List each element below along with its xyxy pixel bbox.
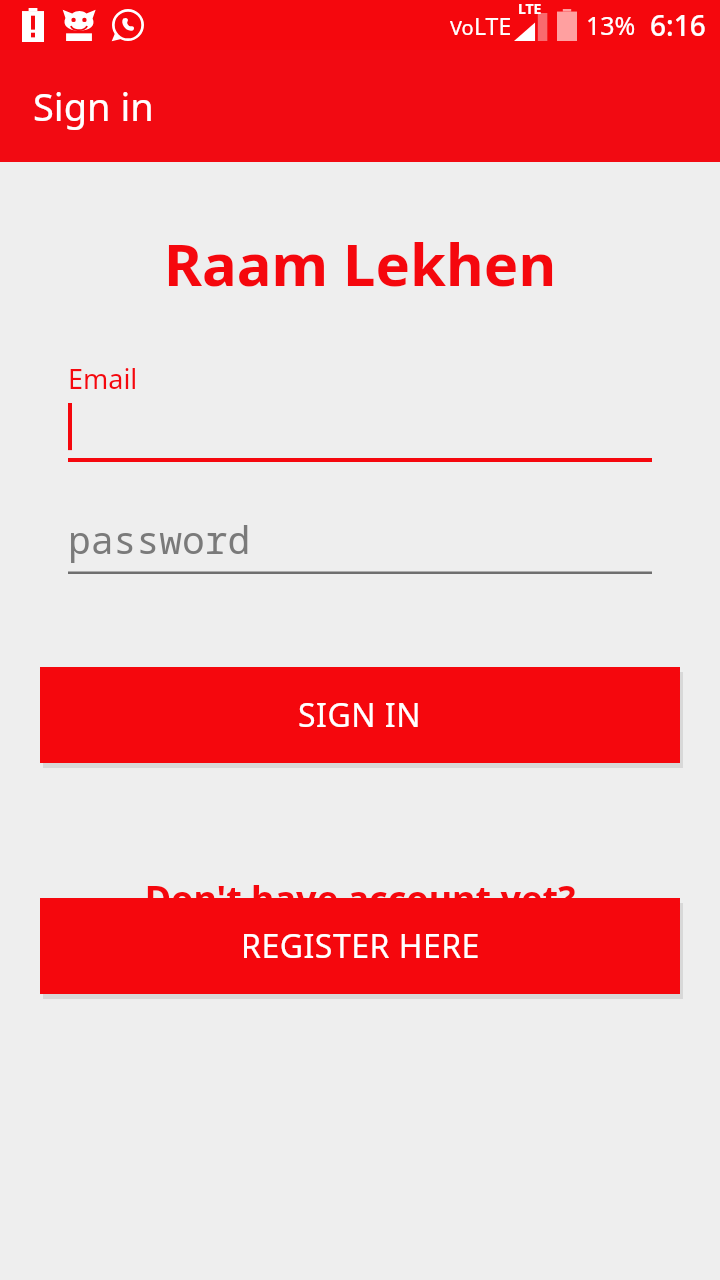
staticText: Raam Lekhen [0, 224, 720, 303]
staticText: 6:16 [650, 6, 706, 44]
staticText: password [68, 513, 251, 565]
staticText: Sign in [33, 80, 154, 132]
button[interactable]: password [68, 512, 652, 574]
staticText: 13% [586, 8, 636, 42]
staticText: Vo [450, 14, 474, 41]
button[interactable]: SIGN IN [40, 667, 680, 763]
staticText: SIGN IN [298, 693, 422, 737]
button[interactable] [68, 400, 652, 462]
button[interactable]: REGISTER HERE [40, 898, 680, 994]
staticText: LTE [474, 10, 512, 41]
staticText: Don't have account yet? [0, 874, 720, 923]
staticText: REGISTER HERE [241, 924, 480, 968]
staticText: Email [68, 360, 138, 397]
staticText: LTE [518, 0, 542, 18]
